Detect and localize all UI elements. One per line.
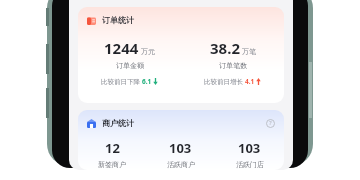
button[interactable]: 订单统计 — [78, 7, 284, 103]
staticText: 活跃商户 — [167, 160, 195, 169]
staticText: 12 — [105, 139, 120, 157]
staticText: 订单统计 — [102, 15, 134, 25]
staticText: 1244 — [104, 38, 139, 58]
staticText: 比较前日增长 — [204, 78, 243, 86]
staticText: 活跃门店 — [236, 160, 264, 169]
staticText: 万元 — [141, 47, 155, 56]
staticText: 商户统计 — [102, 118, 134, 128]
staticText: 103 — [238, 139, 261, 157]
staticText: 新签商户 — [98, 160, 126, 169]
staticText: 103 — [169, 139, 192, 157]
staticText: 6.1 — [142, 77, 152, 86]
button[interactable]: Help — [265, 118, 275, 128]
staticText: 4.1 — [245, 77, 255, 86]
staticText: 比较前日下降 — [101, 78, 140, 86]
staticText: 38.2 — [210, 38, 240, 58]
button[interactable]: 商户统计 — [78, 110, 284, 170]
staticText: 订单金额 — [116, 61, 144, 70]
staticText: ? — [269, 119, 272, 127]
staticText: 万笔 — [242, 47, 256, 56]
staticText: 订单笔数 — [219, 61, 247, 70]
